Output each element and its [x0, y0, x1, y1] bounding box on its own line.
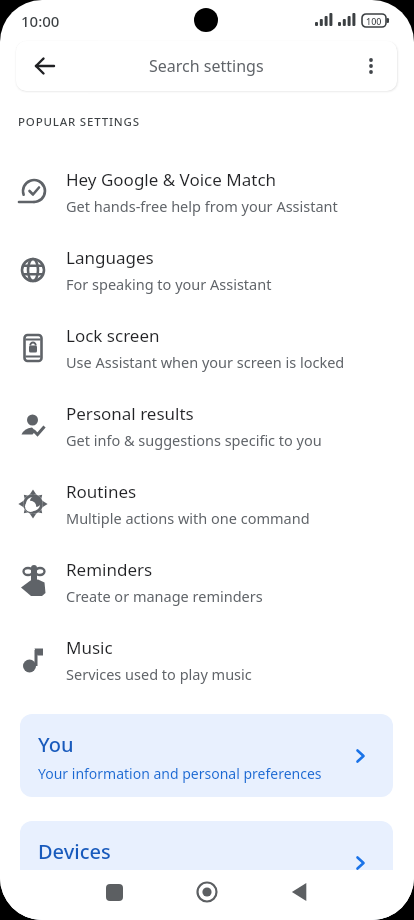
staticText: Multiple actions with one command: [66, 508, 310, 528]
button[interactable]: [96, 874, 132, 910]
staticText: Reminders: [66, 558, 153, 581]
staticText: Lock screen: [66, 324, 160, 347]
staticText: For speaking to your Assistant: [66, 274, 272, 294]
button[interactable]: Devices: [20, 821, 393, 920]
staticText: Create or manage reminders: [66, 586, 263, 606]
button[interactable]: [22, 43, 68, 89]
staticText: 100: [366, 15, 382, 27]
staticText: Use Assistant when your screen is locked: [66, 352, 345, 372]
button[interactable]: [282, 874, 318, 910]
button[interactable]: You: [20, 714, 393, 797]
button[interactable]: Hey Google & Voice Match: [0, 153, 414, 231]
button[interactable]: Routines: [0, 465, 414, 543]
staticText: Personal results: [66, 402, 194, 425]
button[interactable]: [351, 41, 391, 91]
staticText: You: [38, 731, 74, 758]
button[interactable]: Lock screen: [0, 309, 414, 387]
staticText: Languages: [66, 246, 154, 269]
staticText: Routines: [66, 480, 137, 503]
button[interactable]: Music: [0, 621, 414, 699]
staticText: Hey Google & Voice Match: [66, 168, 277, 191]
button[interactable]: Personal results: [0, 387, 414, 465]
button[interactable]: Languages: [0, 231, 414, 309]
staticText: 10:00: [21, 11, 60, 31]
staticText: Get info & suggestions specific to you: [66, 430, 322, 450]
staticText: Search settings: [149, 55, 264, 77]
staticText: Music: [66, 636, 113, 659]
button[interactable]: Search settings: [16, 41, 397, 91]
staticText: Devices: [38, 838, 111, 865]
button[interactable]: Reminders: [0, 543, 414, 621]
staticText: Your information and personal preference…: [38, 764, 322, 783]
staticText: POPULAR SETTINGS: [18, 114, 140, 130]
button[interactable]: [189, 874, 225, 910]
staticText: Services used to play music: [66, 664, 252, 684]
staticText: Get hands-free help from your Assistant: [66, 196, 338, 216]
